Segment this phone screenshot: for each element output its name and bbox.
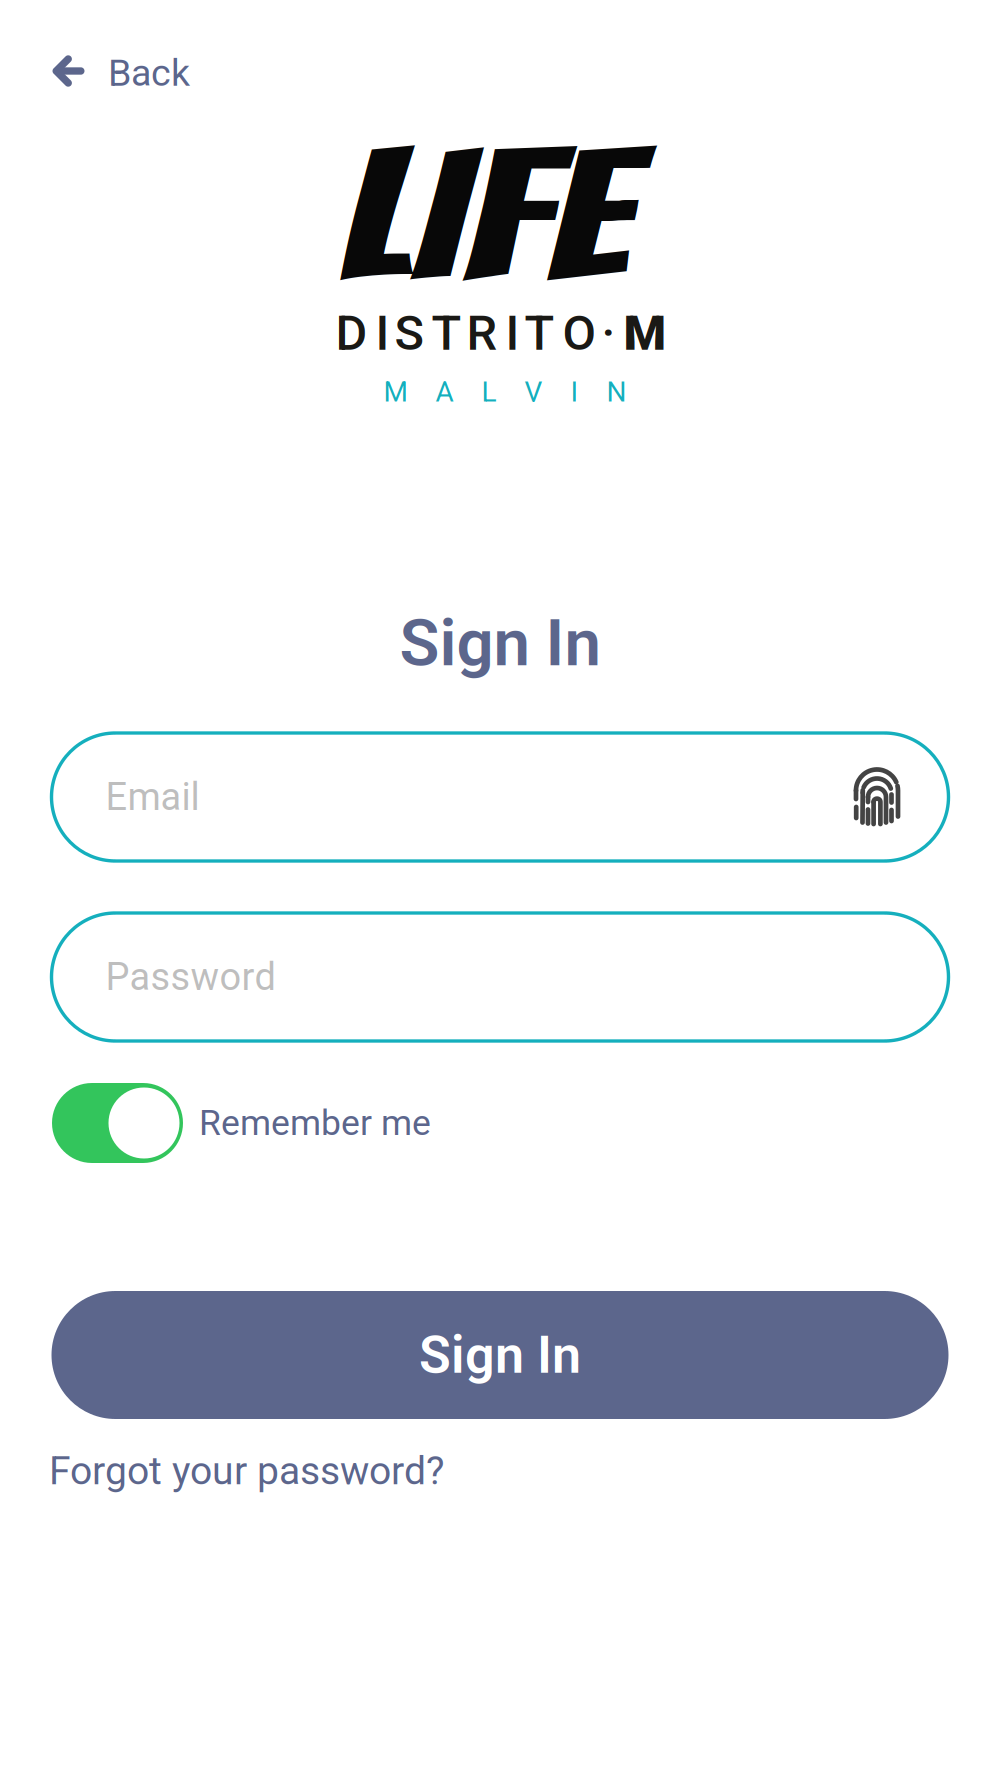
staticText: D I S T R I T O · M [335, 305, 666, 361]
staticText: Email [105, 775, 199, 819]
button[interactable]: Remember me [0, 1075, 431, 1171]
staticText: Forgot your password? [49, 1448, 444, 1494]
button[interactable]: Sign in with Touch ID [853, 766, 900, 828]
staticText: Remember me [199, 1102, 431, 1144]
staticText: M A L V I N [383, 376, 626, 408]
staticText: Password [105, 955, 275, 999]
staticText: Back [108, 51, 190, 95]
staticText: Sign In [419, 1324, 581, 1385]
button[interactable]: Forgot your password? [0, 1440, 444, 1502]
staticText: Sign In [399, 605, 600, 681]
button[interactable]: Back [0, 35, 218, 111]
button[interactable]: Sign In [51, 1291, 948, 1419]
staticText: LIFE [375, 119, 591, 313]
